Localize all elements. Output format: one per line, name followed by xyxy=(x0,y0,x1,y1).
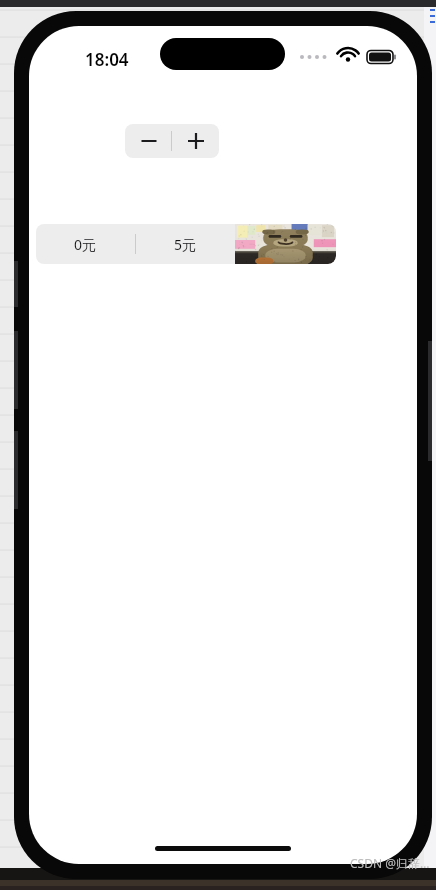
staticText: CSDN @归辞… xyxy=(350,855,430,871)
staticText: 5元 xyxy=(174,235,197,254)
button[interactable]: 0元 xyxy=(36,224,135,264)
button[interactable]: Decrease xyxy=(125,124,172,158)
button[interactable]: Increase xyxy=(172,124,219,158)
button[interactable]: 5元 xyxy=(136,224,235,264)
staticText: 18:04 xyxy=(85,48,129,71)
staticText: 0元 xyxy=(74,235,97,254)
button[interactable]: Cat photo xyxy=(235,224,336,264)
